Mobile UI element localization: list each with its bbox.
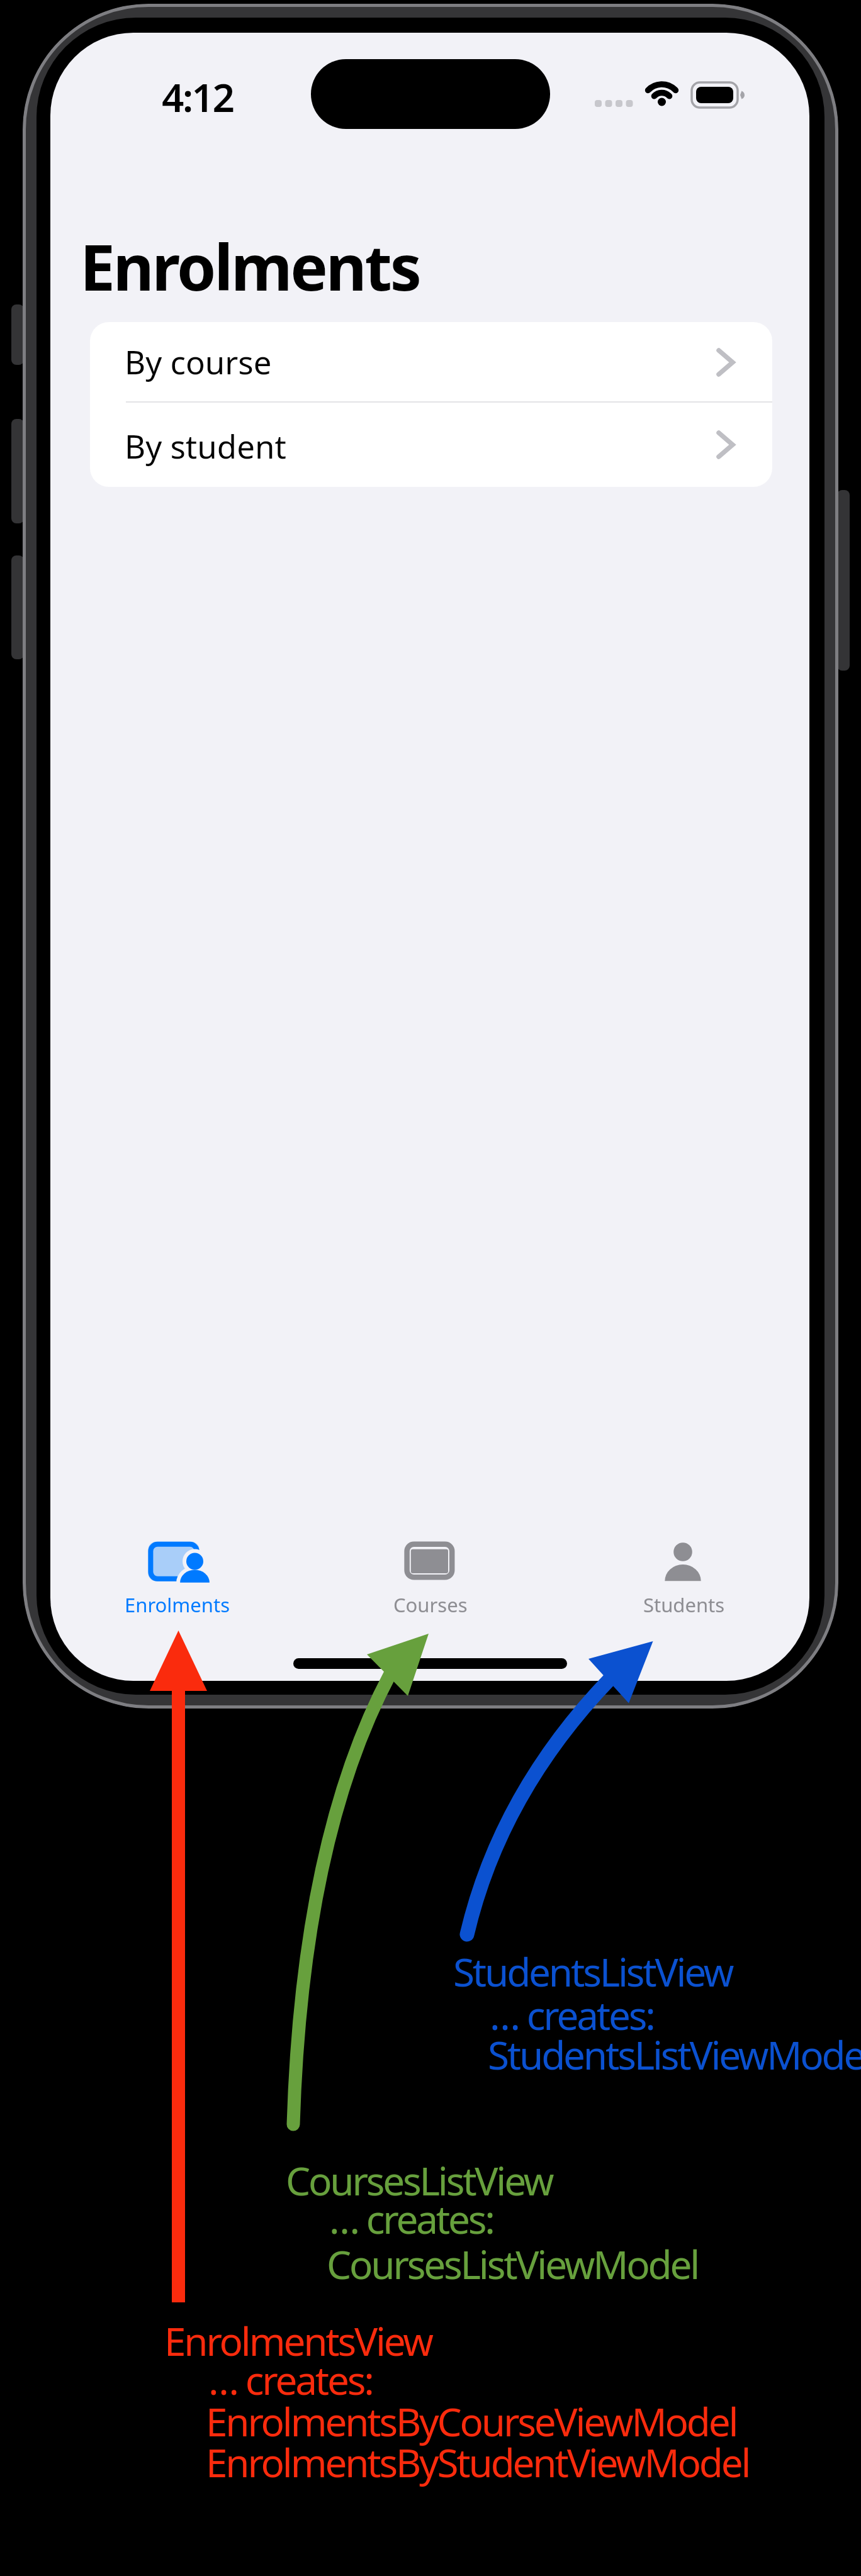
staticText: EnrolmentsView [164,2314,432,2367]
button[interactable]: By student [90,404,772,487]
staticText: … creates: [208,2353,373,2406]
staticText: Enrolments [125,1592,230,1618]
button[interactable] [595,1536,772,1649]
staticText: 4:12 [162,70,234,123]
staticText: Courses [393,1592,468,1618]
staticText: By student [125,424,286,467]
button[interactable]: By course [90,322,772,404]
staticText: CoursesListView [286,2154,553,2207]
button[interactable] [342,1536,519,1649]
staticText: StudentsListViewModel [488,2028,861,2081]
staticText: CoursesListViewModel [327,2238,699,2290]
staticText: … creates: [329,2192,493,2245]
staticText: Enrolments [80,223,420,309]
staticText: EnrolmentsByCourseViewModel [206,2395,737,2448]
staticText: Students [643,1592,725,1618]
button[interactable] [88,1536,264,1649]
staticText: StudentsListView [453,1945,733,1998]
staticText: … creates: [490,1988,654,2041]
staticText: EnrolmentsByStudentViewModel [206,2436,750,2489]
staticText: By course [125,340,272,383]
